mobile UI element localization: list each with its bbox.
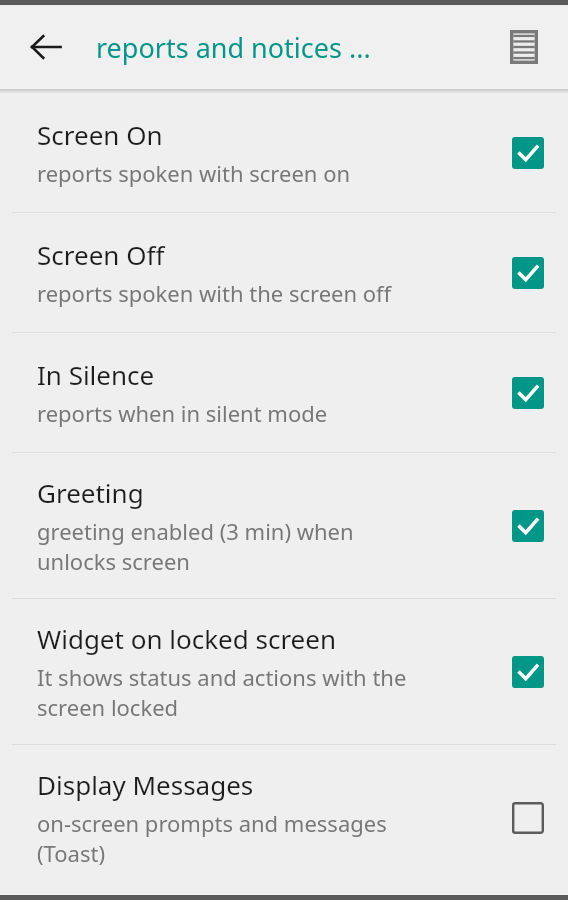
staticText: In Silence (37, 357, 155, 392)
other: Checked (512, 377, 544, 409)
staticText: Screen On (37, 117, 163, 152)
staticText: Screen Off (37, 237, 165, 272)
staticText: Greeting (37, 475, 144, 510)
other: Checked (512, 137, 544, 169)
staticText: (Toast) (37, 838, 106, 868)
other: Checked (512, 510, 544, 542)
other: Checked (512, 257, 544, 289)
staticText: reports spoken with the screen off (37, 278, 392, 308)
button[interactable]: Greeting (0, 453, 568, 598)
button[interactable]: In Silence (0, 333, 568, 452)
button[interactable]: Display Messages (0, 745, 568, 890)
button[interactable]: Menu (492, 15, 556, 79)
staticText: It shows status and actions with the (37, 662, 407, 692)
button[interactable]: Screen Off (0, 213, 568, 332)
staticText: reports and notices ... (96, 29, 492, 66)
button[interactable]: Back (14, 15, 78, 79)
staticText: Display Messages (37, 767, 254, 802)
staticText: greeting enabled (3 min) when (37, 516, 354, 546)
other: Unchecked (512, 802, 544, 834)
staticText: on-screen prompts and messages (37, 808, 387, 838)
staticText: reports spoken with screen on (37, 158, 351, 188)
button[interactable]: Widget on locked screen (0, 599, 568, 744)
staticText: unlocks screen (37, 546, 190, 576)
other: Checked (512, 656, 544, 688)
staticText: reports when in silent mode (37, 398, 328, 428)
button[interactable]: Screen On (0, 93, 568, 212)
staticText: screen locked (37, 692, 179, 722)
staticText: Widget on locked screen (37, 621, 337, 656)
